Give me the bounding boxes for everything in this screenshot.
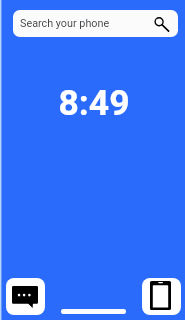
- staticText: 8:49: [58, 82, 130, 124]
- staticText: Search your phone: [20, 17, 110, 30]
- button[interactable]: Phone: [142, 278, 181, 315]
- button[interactable]: Search your phone: [13, 10, 178, 37]
- button[interactable]: Messages: [6, 278, 45, 315]
